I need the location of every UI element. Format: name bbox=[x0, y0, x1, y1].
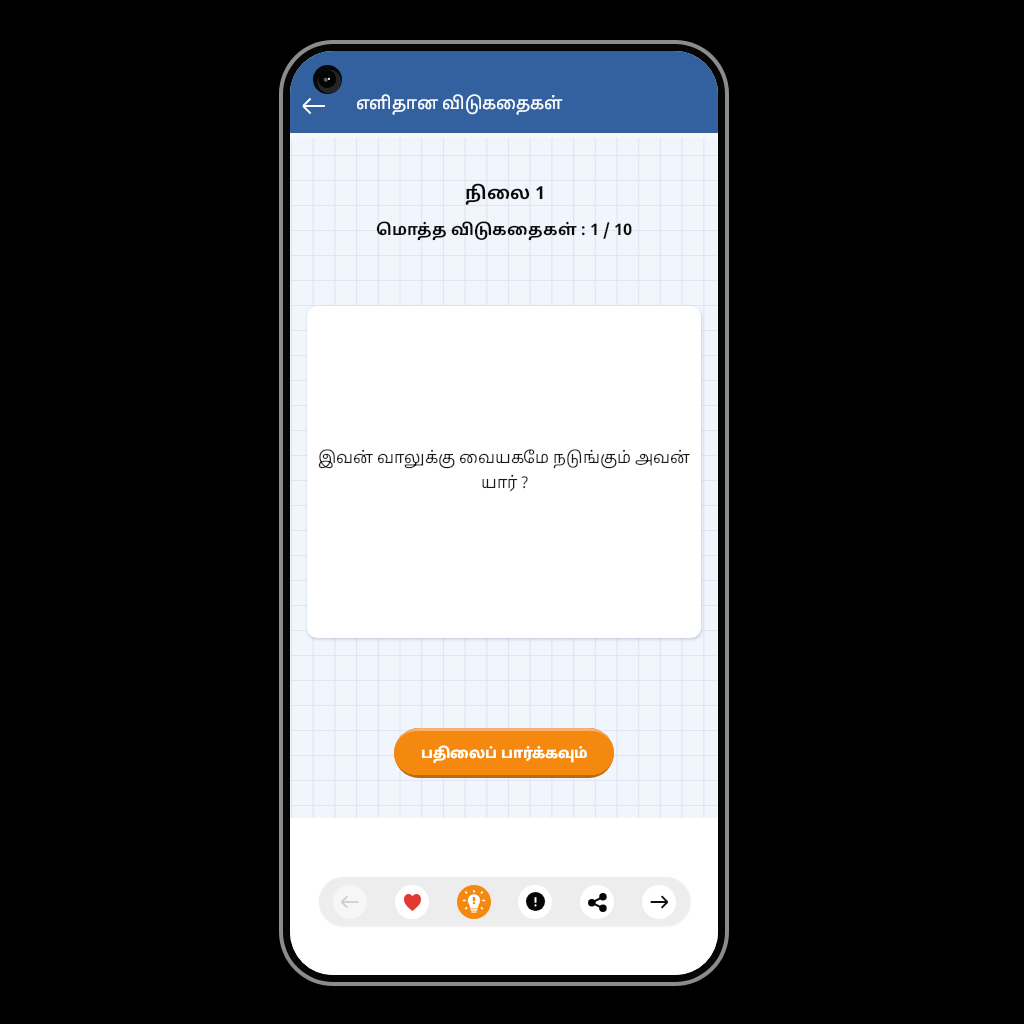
button[interactable]: Hint bbox=[457, 885, 491, 919]
button[interactable] bbox=[394, 728, 614, 778]
button[interactable]: Report bbox=[518, 885, 552, 919]
button[interactable]: Next riddle bbox=[642, 885, 676, 919]
button[interactable]: Share bbox=[580, 885, 614, 919]
button[interactable]: Previous riddle bbox=[333, 885, 367, 919]
button[interactable]: Favourite bbox=[395, 885, 429, 919]
button[interactable]: Back bbox=[292, 84, 336, 128]
